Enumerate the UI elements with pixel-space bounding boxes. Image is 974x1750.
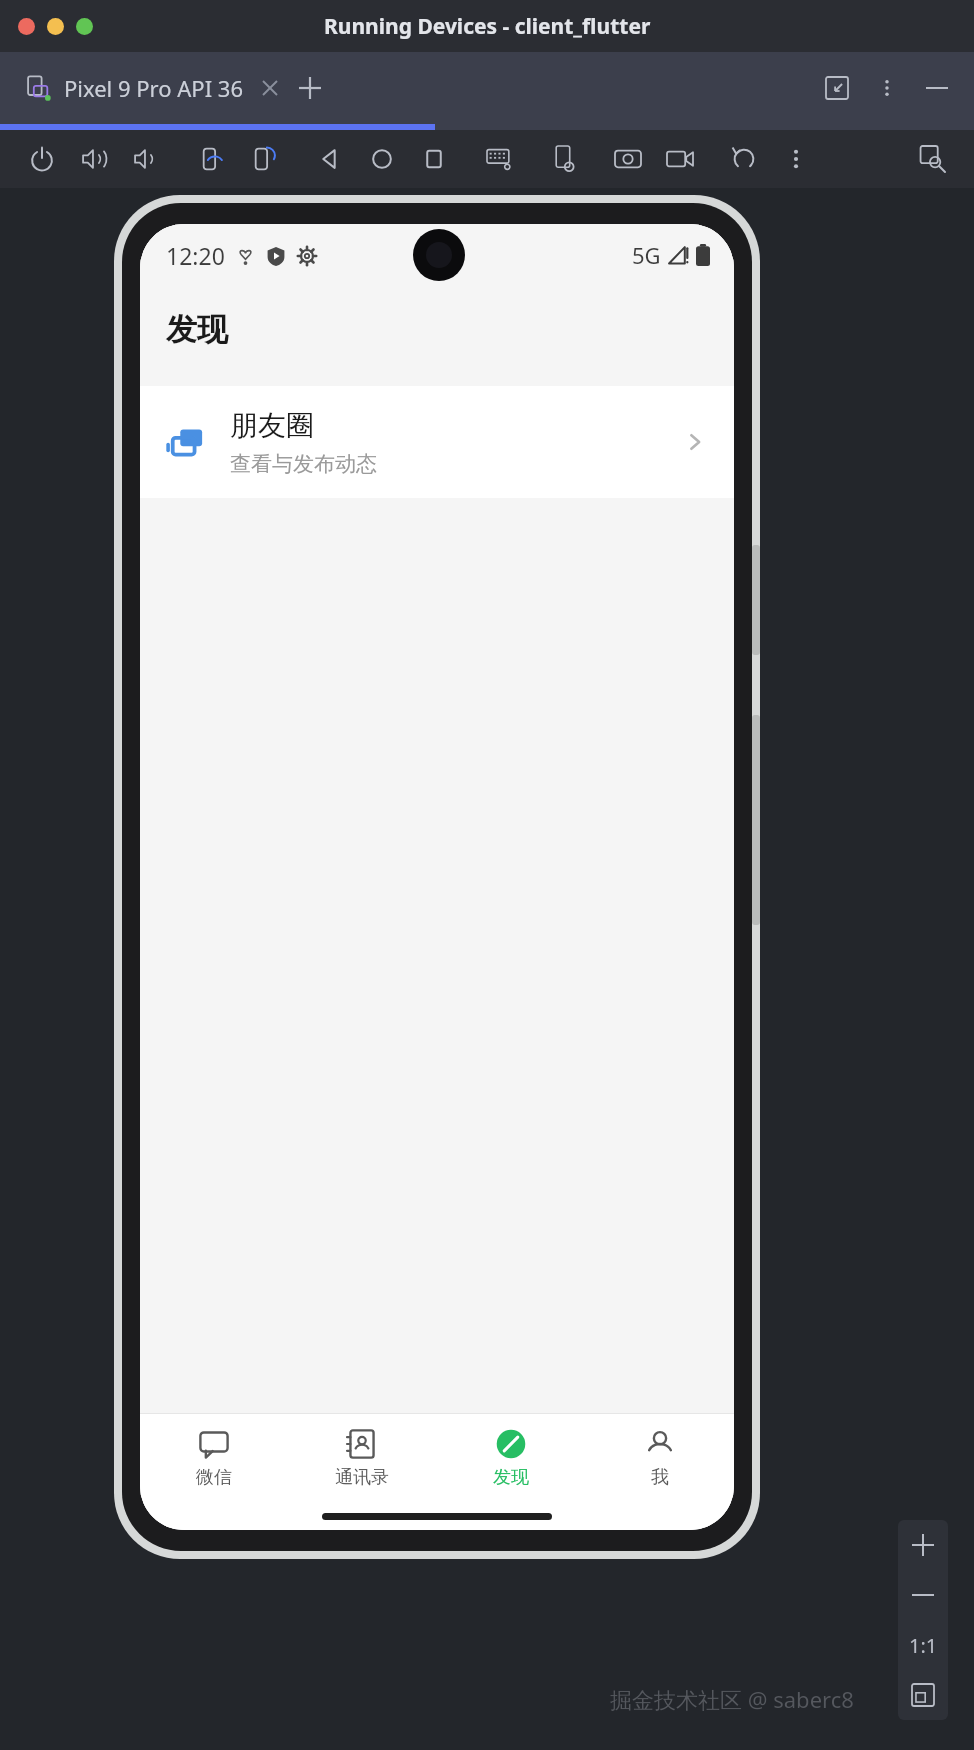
button[interactable]: More	[770, 133, 822, 185]
staticText: 发现	[493, 1466, 529, 1489]
button[interactable]: Minimize	[47, 18, 64, 35]
button[interactable]: 通讯录	[288, 1414, 436, 1502]
button[interactable]: Overview	[408, 133, 460, 185]
button[interactable]: 我	[585, 1414, 734, 1502]
staticText: 查看与发布动态	[230, 451, 377, 477]
button[interactable]: Close tab	[257, 75, 283, 101]
staticText: 通讯录	[335, 1466, 389, 1489]
button[interactable]: Dock	[822, 73, 852, 103]
button[interactable]: Fit to window	[898, 1670, 948, 1720]
button[interactable]: Screenshot	[602, 133, 654, 185]
button[interactable]: Device settings	[538, 133, 590, 185]
button[interactable]: Pixel 9 Pro API 36	[26, 73, 325, 103]
button[interactable]: Power	[16, 133, 68, 185]
button[interactable]: Inspect	[912, 139, 952, 179]
staticText: 12:20	[166, 240, 225, 271]
button[interactable]: Actual size	[898, 1620, 948, 1670]
button[interactable]: Record	[654, 133, 706, 185]
staticText: 掘金技术社区 @ saberc8	[610, 1684, 854, 1714]
button[interactable]: Volume down	[120, 133, 172, 185]
button[interactable]: Add device	[295, 73, 325, 103]
button[interactable]: Back	[304, 133, 356, 185]
staticText: 5G	[632, 240, 661, 270]
staticText: 朋友圈	[230, 408, 314, 443]
button[interactable]: Maximize	[76, 18, 93, 35]
staticText: 发现	[166, 310, 228, 349]
button[interactable]: Volume up	[68, 133, 120, 185]
button[interactable]: More options	[872, 73, 902, 103]
staticText: Running Devices - client_flutter	[324, 12, 651, 41]
button[interactable]: 发现	[436, 1414, 585, 1502]
staticText: 我	[651, 1466, 669, 1489]
button[interactable]: Rotate left	[186, 133, 238, 185]
button[interactable]: Zoom in	[898, 1520, 948, 1570]
staticText: 微信	[196, 1466, 232, 1489]
button[interactable]: History	[718, 133, 770, 185]
button[interactable]: Home	[356, 133, 408, 185]
button[interactable]: Minimize panel	[922, 73, 952, 103]
staticText: Pixel 9 Pro API 36	[64, 73, 243, 103]
button[interactable]: Keyboard	[474, 133, 526, 185]
button[interactable]: 朋友圈	[140, 386, 734, 498]
button[interactable]: 微信	[140, 1414, 288, 1502]
button[interactable]: Rotate right	[238, 133, 290, 185]
button[interactable]: Close	[18, 18, 35, 35]
button[interactable]: Zoom out	[898, 1570, 948, 1620]
staticText: 1:1	[909, 1632, 938, 1659]
